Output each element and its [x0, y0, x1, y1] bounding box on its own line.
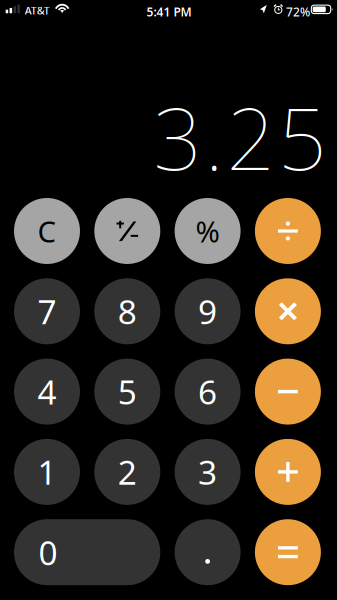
button[interactable]: Multiply	[255, 278, 321, 344]
button[interactable]: 0	[14, 519, 160, 585]
button[interactable]: Equals	[255, 519, 321, 585]
button[interactable]: 3	[175, 439, 241, 505]
staticText: %	[196, 211, 220, 250]
button[interactable]: 8	[94, 278, 160, 344]
staticText: 2	[118, 450, 137, 494]
staticText: 5	[118, 369, 137, 414]
button[interactable]: 9	[175, 278, 241, 344]
button[interactable]: Decimal point	[175, 519, 241, 585]
staticText: 72%	[286, 4, 310, 20]
button[interactable]: 1	[14, 439, 80, 505]
button[interactable]: 5	[94, 359, 160, 425]
staticText: 5:41 PM	[147, 4, 192, 20]
staticText: 4	[37, 369, 56, 414]
button[interactable]: 2	[94, 439, 160, 505]
button[interactable]: 6	[175, 359, 241, 425]
staticText: 9	[198, 289, 217, 333]
button[interactable]: Plus minus	[94, 198, 160, 264]
button[interactable]: %	[175, 198, 241, 264]
staticText: 1	[37, 450, 56, 494]
staticText: 3.25	[153, 80, 327, 194]
staticText: 6	[198, 369, 217, 414]
button[interactable]: C	[14, 198, 80, 264]
staticText: 3	[198, 450, 217, 494]
button[interactable]: Add	[255, 439, 321, 505]
staticText: C	[37, 211, 56, 250]
button[interactable]: 4	[14, 359, 80, 425]
staticText: 8	[118, 289, 137, 333]
staticText: AT&T	[25, 3, 50, 18]
button[interactable]: 7	[14, 278, 80, 344]
button[interactable]: Divide	[255, 198, 321, 264]
button[interactable]: Subtract	[255, 359, 321, 425]
staticText: 0	[38, 530, 57, 574]
staticText: 7	[37, 289, 56, 333]
